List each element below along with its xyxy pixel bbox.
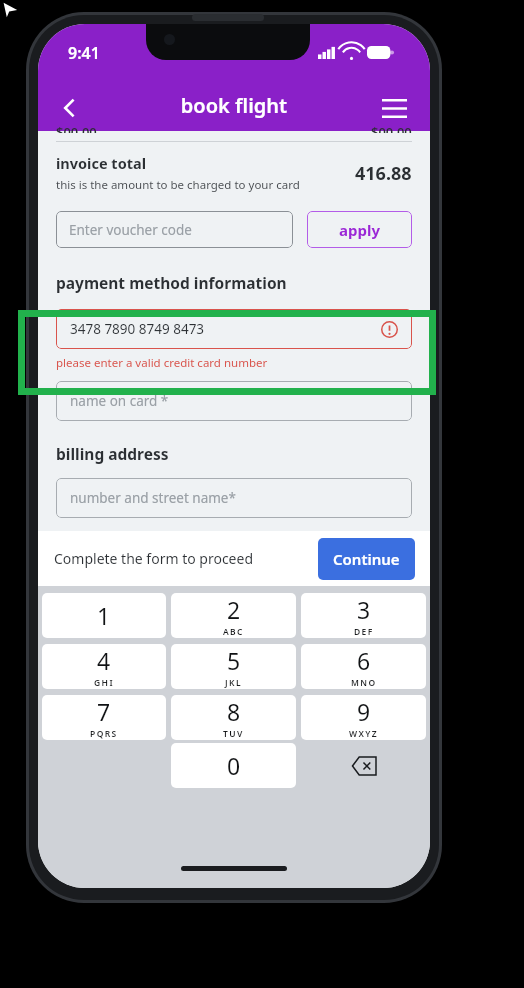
button[interactable]: Back [48,86,92,130]
staticText: 8 [227,696,241,727]
button[interactable]: 8 [171,695,296,740]
staticText: TUV [223,728,244,740]
button[interactable]: 1 [42,593,166,638]
staticText: book flight [38,92,430,119]
staticText: 9:41 [68,42,100,64]
staticText: please enter a valid credit card number [56,355,268,371]
staticText: 6 [357,645,371,676]
staticText: payment method information [56,272,287,293]
button[interactable]: name on card * [56,381,412,421]
button[interactable]: number and street name* [56,478,412,518]
button[interactable]: 0 [171,743,296,788]
staticText: DEF [354,626,374,638]
staticText: GHI [94,677,114,689]
button[interactable]: Backspace [301,743,426,788]
staticText: WXYZ [349,728,379,740]
button[interactable]: 3 [301,593,426,638]
staticText: 0 [227,750,241,781]
staticText: 9 [357,696,371,727]
staticText: 5 [227,645,241,676]
button[interactable]: 3478 7890 8749 8473 [56,309,412,349]
staticText: Complete the form to proceed [54,549,254,568]
staticText: 4 [97,645,111,676]
staticText: Continue [333,549,400,569]
staticText: MNO [351,677,377,689]
button[interactable]: 7 [42,695,166,740]
staticText: $00.00 [371,123,412,133]
staticText: name on card * [70,392,169,410]
staticText: Enter voucher code [69,221,192,239]
staticText: 2 [227,594,241,625]
staticText: 416.88 [355,161,412,186]
staticText: invoice total [56,153,147,173]
button[interactable]: apply [307,211,412,248]
staticText: billing address [56,443,169,464]
staticText: 7 [97,696,111,727]
staticText: 1 [97,600,111,631]
button[interactable]: Continue [318,538,415,580]
button[interactable]: 5 [171,644,296,689]
button[interactable]: Menu [372,86,416,130]
staticText: ABC [223,626,244,638]
staticText: PQRS [90,728,118,740]
button[interactable]: Enter voucher code [56,211,293,248]
button[interactable]: 2 [171,593,296,638]
staticText: $00.00 [56,123,97,133]
staticText: JKL [225,677,242,689]
staticText: apply [339,220,380,240]
button[interactable]: 6 [301,644,426,689]
staticText: 3 [357,594,371,625]
button[interactable]: 4 [42,644,166,689]
staticText: 3478 7890 8749 8473 [70,320,205,338]
staticText: number and street name* [70,489,236,507]
staticText: this is the amount to be charged to your… [56,177,300,193]
button[interactable]: 9 [301,695,426,740]
